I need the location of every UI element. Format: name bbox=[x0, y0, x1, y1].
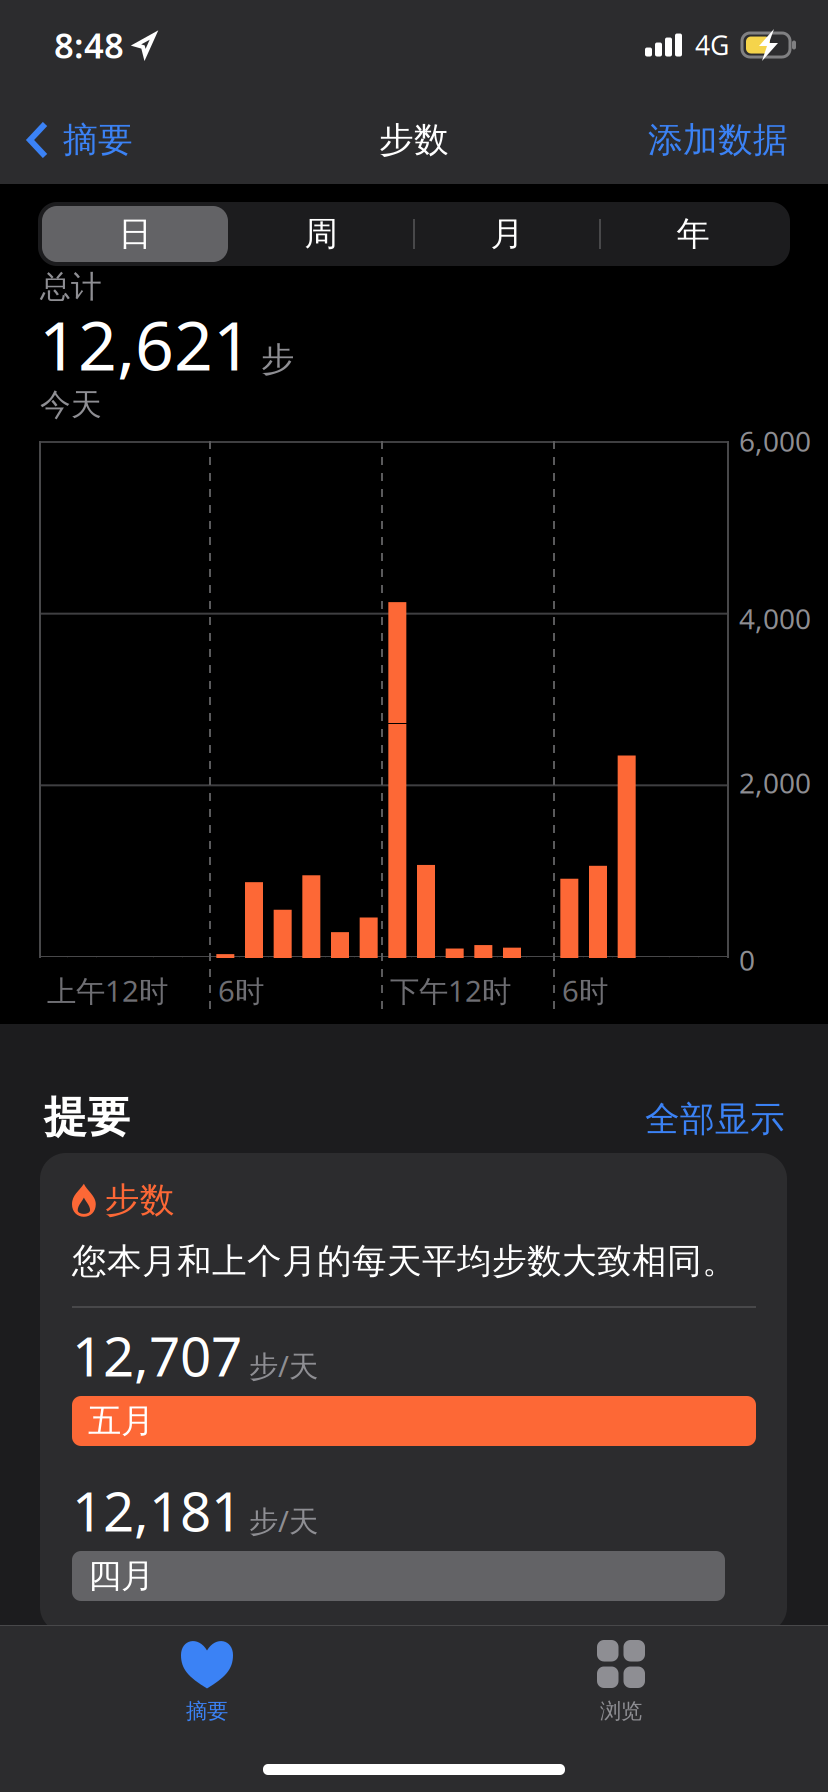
staticText: 6,000 bbox=[739, 422, 811, 460]
staticText: 日 bbox=[118, 213, 151, 254]
staticText: 12,707 bbox=[72, 1319, 242, 1392]
staticText: 五月 bbox=[88, 1400, 154, 1441]
staticText: 步数 bbox=[379, 119, 449, 161]
button[interactable]: 浏览 bbox=[414, 1626, 828, 1724]
staticText: 年 bbox=[676, 213, 709, 254]
staticText: 6时 bbox=[562, 971, 608, 1010]
staticText: 全部显示 bbox=[645, 1098, 785, 1141]
button[interactable]: 摘要 bbox=[0, 1626, 414, 1724]
staticText: 下午12时 bbox=[390, 971, 511, 1010]
staticText: 12,181 bbox=[72, 1474, 242, 1547]
staticText: 添加数据 bbox=[648, 119, 788, 161]
staticText: 步数 bbox=[105, 1179, 175, 1222]
staticText: 0 bbox=[739, 941, 755, 979]
staticText: 12,621 bbox=[39, 299, 252, 389]
staticText: 步 bbox=[261, 339, 294, 380]
button[interactable]: 周 bbox=[228, 206, 414, 262]
button[interactable]: 日 bbox=[42, 206, 228, 262]
button[interactable]: 添加数据 bbox=[648, 102, 828, 172]
staticText: 2,000 bbox=[739, 764, 811, 801]
staticText: 提要 bbox=[44, 1091, 130, 1143]
button[interactable]: 年 bbox=[600, 206, 786, 262]
button[interactable]: 全部显示 bbox=[645, 1098, 785, 1141]
staticText: 4G bbox=[695, 27, 729, 63]
staticText: 8:48 bbox=[54, 22, 124, 68]
staticText: 四月 bbox=[88, 1555, 154, 1596]
staticText: 周 bbox=[304, 213, 337, 254]
staticText: 上午12时 bbox=[47, 971, 168, 1010]
staticText: 4,000 bbox=[739, 600, 811, 637]
staticText: 今天 bbox=[40, 386, 102, 424]
button[interactable]: 月 bbox=[414, 206, 600, 262]
staticText: 浏览 bbox=[600, 1698, 642, 1724]
staticText: 总计 bbox=[40, 268, 102, 306]
staticText: 月 bbox=[490, 213, 523, 254]
staticText: 步/天 bbox=[249, 1501, 318, 1540]
staticText: 摘要 bbox=[186, 1698, 228, 1724]
staticText: 摘要 bbox=[63, 119, 133, 161]
staticText: 您本月和上个月的每天平均步数大致相同。 bbox=[72, 1240, 737, 1283]
button[interactable]: 摘要 bbox=[0, 102, 133, 172]
staticText: 步/天 bbox=[249, 1346, 318, 1385]
staticText: 6时 bbox=[218, 971, 264, 1010]
